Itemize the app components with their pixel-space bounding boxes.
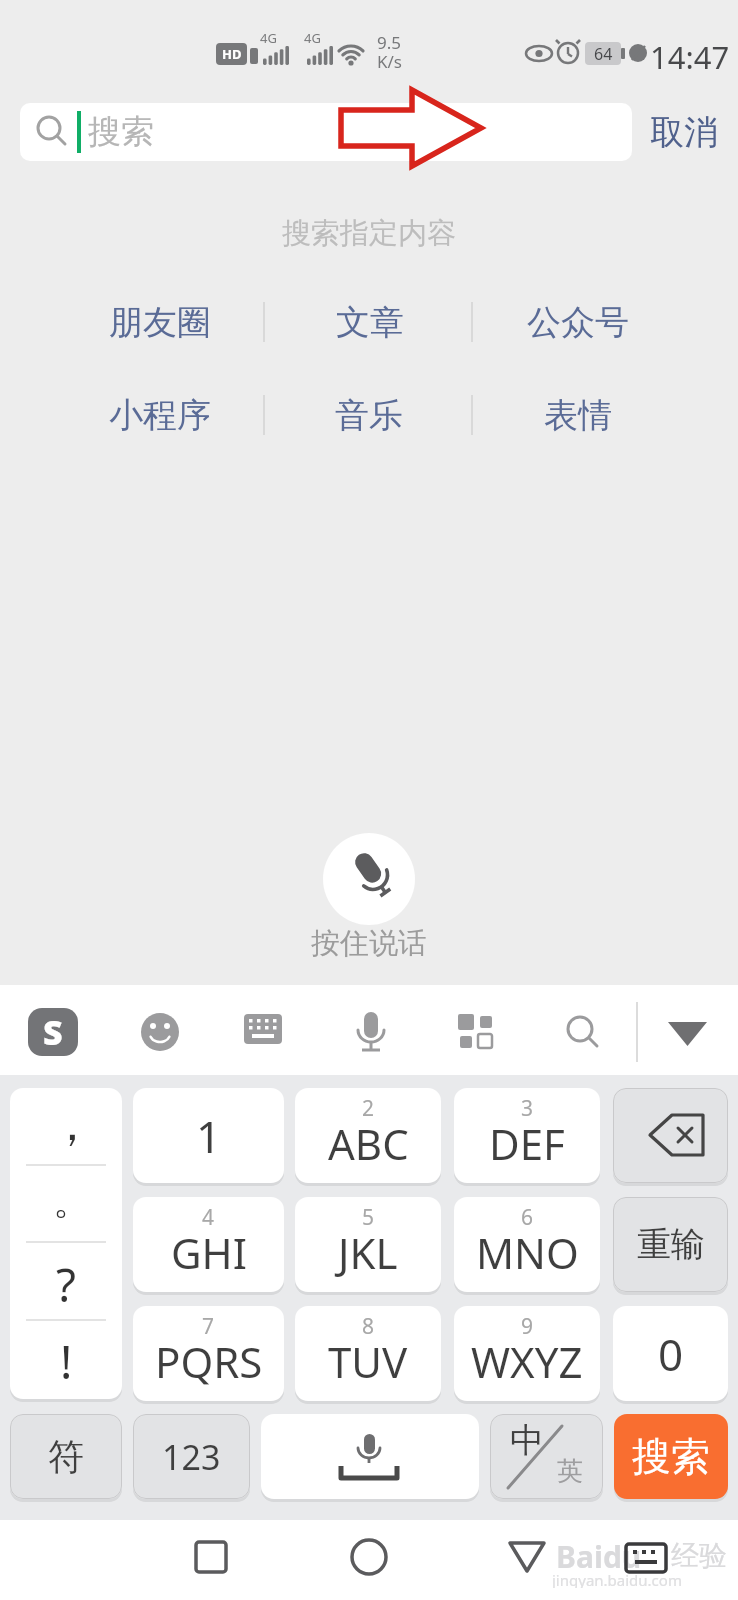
- button[interactable]: [323, 833, 415, 925]
- staticText: 音乐: [335, 394, 403, 437]
- staticText: 朋友圈: [109, 301, 211, 344]
- staticText: 公众号: [527, 301, 629, 344]
- button[interactable]: [242, 1010, 286, 1054]
- staticText: 4: [202, 1203, 215, 1232]
- staticText: 中: [510, 1419, 544, 1462]
- staticText: 经验: [671, 1538, 727, 1572]
- staticText: HD: [222, 45, 242, 63]
- button[interactable]: [138, 1010, 182, 1054]
- staticText: PQRS: [155, 1333, 263, 1390]
- button[interactable]: [497, 1527, 557, 1587]
- staticText: 搜索指定内容: [282, 215, 456, 251]
- button[interactable]: [24, 1006, 80, 1058]
- staticText: 7: [202, 1312, 215, 1341]
- staticText: 取消: [650, 111, 718, 154]
- button[interactable]: [665, 1010, 709, 1054]
- button[interactable]: 0: [613, 1306, 728, 1401]
- button[interactable]: [455, 1010, 499, 1054]
- staticText: 1: [196, 1106, 222, 1166]
- staticText: 2: [362, 1094, 375, 1123]
- button[interactable]: 重输: [613, 1197, 728, 1292]
- button[interactable]: [560, 1010, 604, 1054]
- staticText: JKL: [338, 1224, 398, 1281]
- staticText: 64: [594, 43, 613, 65]
- button[interactable]: 符: [10, 1414, 122, 1499]
- staticText: S: [43, 1009, 63, 1055]
- button[interactable]: [349, 1010, 393, 1054]
- staticText: ?: [56, 1253, 76, 1316]
- button[interactable]: 8: [295, 1306, 441, 1401]
- staticText: 文章: [336, 301, 404, 344]
- staticText: 3: [521, 1094, 534, 1123]
- staticText: K/s: [377, 50, 402, 70]
- button[interactable]: [339, 1527, 399, 1587]
- staticText: Baidu: [556, 1536, 642, 1572]
- button[interactable]: 音乐: [269, 393, 469, 437]
- staticText: 重输: [637, 1223, 705, 1266]
- staticText: 。: [53, 1177, 91, 1225]
- staticText: 按住说话: [311, 925, 427, 961]
- button[interactable]: 6: [454, 1197, 600, 1292]
- button[interactable]: 表情: [478, 393, 678, 437]
- staticText: 123: [162, 1434, 221, 1480]
- button[interactable]: [181, 1527, 241, 1587]
- staticText: 英: [557, 1455, 583, 1488]
- staticText: 4G: [260, 29, 277, 47]
- staticText: MNO: [476, 1224, 579, 1281]
- staticText: 9.5: [377, 31, 402, 51]
- button[interactable]: 搜索: [614, 1414, 728, 1499]
- button[interactable]: [613, 1088, 728, 1183]
- button[interactable]: 123: [133, 1414, 250, 1499]
- button[interactable]: 3: [454, 1088, 600, 1183]
- button[interactable]: 小程序: [60, 393, 260, 437]
- staticText: 9: [521, 1312, 534, 1341]
- staticText: 小程序: [109, 394, 211, 437]
- staticText: WXYZ: [471, 1333, 583, 1390]
- staticText: ，: [49, 1096, 95, 1154]
- staticText: GHI: [171, 1224, 247, 1281]
- button[interactable]: 文章: [270, 300, 470, 344]
- button[interactable]: 7: [133, 1306, 284, 1401]
- staticText: 8: [362, 1312, 375, 1341]
- button[interactable]: [261, 1414, 479, 1499]
- staticText: 搜索: [632, 1432, 710, 1481]
- button[interactable]: 取消: [644, 103, 724, 161]
- button[interactable]: 2: [295, 1088, 441, 1183]
- button[interactable]: 朋友圈: [60, 300, 260, 344]
- staticText: !: [60, 1330, 73, 1393]
- staticText: 4G: [304, 29, 321, 47]
- button[interactable]: 4: [133, 1197, 284, 1292]
- button[interactable]: 公众号: [478, 300, 678, 344]
- button[interactable]: [490, 1414, 603, 1499]
- staticText: ABC: [328, 1115, 409, 1172]
- staticText: jingyan.baidu.com: [552, 1570, 682, 1588]
- staticText: 表情: [544, 394, 612, 437]
- button[interactable]: 5: [295, 1197, 441, 1292]
- staticText: DEF: [489, 1115, 565, 1172]
- staticText: 0: [658, 1324, 684, 1384]
- staticText: 6: [521, 1203, 534, 1232]
- button[interactable]: [20, 103, 632, 161]
- button[interactable]: 1: [133, 1088, 284, 1183]
- staticText: 符: [48, 1434, 84, 1479]
- button[interactable]: [10, 1088, 122, 1399]
- staticText: 14:47: [650, 36, 730, 72]
- staticText: 5: [362, 1203, 375, 1232]
- button[interactable]: 9: [454, 1306, 600, 1401]
- staticText: 搜索: [88, 111, 154, 153]
- staticText: TUV: [328, 1333, 408, 1390]
